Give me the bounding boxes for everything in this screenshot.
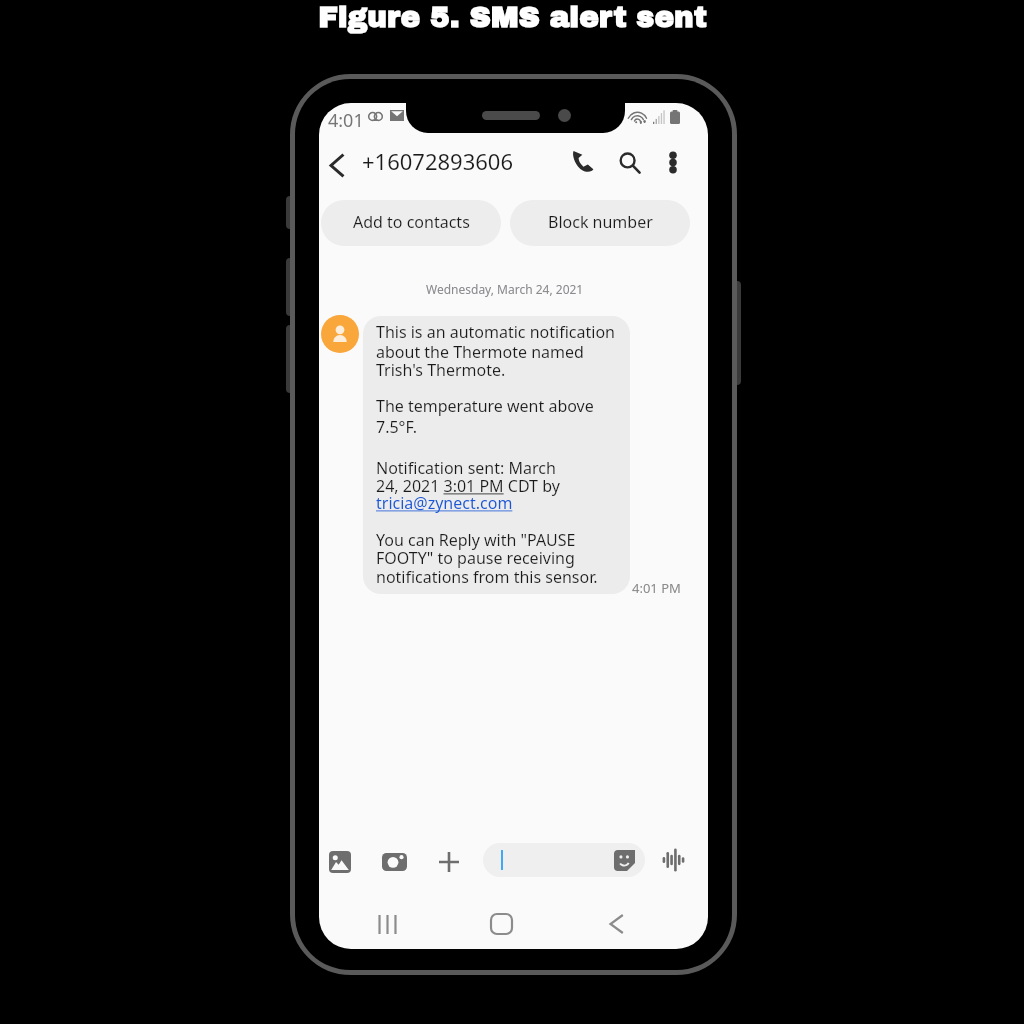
- staticText: notifications from this sensor.: [376, 566, 598, 588]
- button[interactable]: Back: [596, 904, 636, 944]
- staticText: 24, 2021 3:01 PM CDT by: [376, 475, 560, 497]
- button[interactable]: Block number: [510, 200, 690, 246]
- staticText: This is an automatic notification: [376, 321, 615, 343]
- staticText: Trish's Thermote.: [376, 359, 506, 381]
- staticText: about the Thermote named: [376, 341, 584, 363]
- button[interactable]: Add attachment: [429, 842, 469, 882]
- button[interactable]: Add to contacts: [321, 200, 501, 246]
- staticText: 4:01 PM: [632, 579, 681, 597]
- button[interactable]: More options: [652, 141, 694, 183]
- button[interactable]: Gallery: [320, 842, 360, 882]
- staticText: Figure 5. SMS alert sent: [318, 1, 707, 33]
- button[interactable]: Home: [481, 904, 521, 944]
- staticText: 7.5°F.: [376, 416, 418, 438]
- button[interactable]: Voice message: [653, 844, 693, 876]
- staticText: 4:01: [328, 108, 364, 133]
- button[interactable]: Recent apps: [367, 904, 407, 944]
- staticText: Notification sent: March: [376, 457, 556, 479]
- staticText: tricia@zynect.com: [376, 492, 513, 514]
- button[interactable]: Search: [608, 141, 650, 183]
- staticText: Wednesday, March 24, 2021: [426, 281, 584, 297]
- staticText: FOOTY" to pause receiving: [376, 547, 575, 569]
- staticText: Add to contacts: [353, 211, 470, 233]
- button[interactable]: Camera: [374, 842, 414, 882]
- staticText: The temperature went above: [376, 395, 594, 417]
- staticText: Block number: [548, 211, 653, 233]
- staticText: +16072893606: [362, 146, 514, 176]
- button[interactable]: Call: [562, 140, 604, 182]
- button[interactable]: [483, 843, 645, 877]
- staticText: You can Reply with "PAUSE: [376, 529, 576, 551]
- button[interactable]: Back: [320, 144, 352, 186]
